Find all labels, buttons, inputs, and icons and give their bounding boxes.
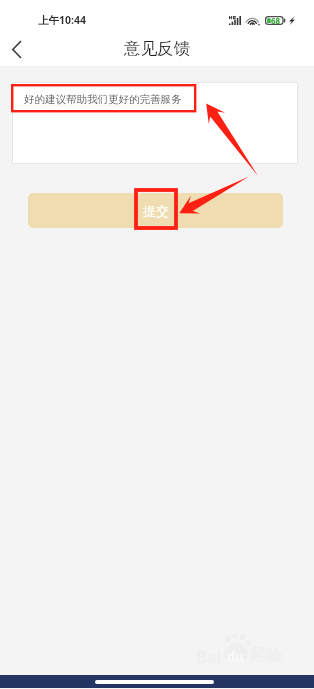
button[interactable]: Back bbox=[0, 33, 32, 65]
staticText: 68 bbox=[271, 15, 281, 26]
staticText: du bbox=[227, 647, 244, 665]
button[interactable]: 提交 bbox=[28, 193, 283, 228]
staticText: 上午10:44 bbox=[38, 13, 86, 27]
staticText: 提交 bbox=[143, 203, 169, 219]
staticText: 意见反馈 bbox=[124, 38, 190, 59]
staticText: 好的建议帮助我们更好的完善服务 bbox=[24, 93, 182, 106]
button[interactable]: 好的建议帮助我们更好的完善服务 bbox=[12, 82, 298, 164]
